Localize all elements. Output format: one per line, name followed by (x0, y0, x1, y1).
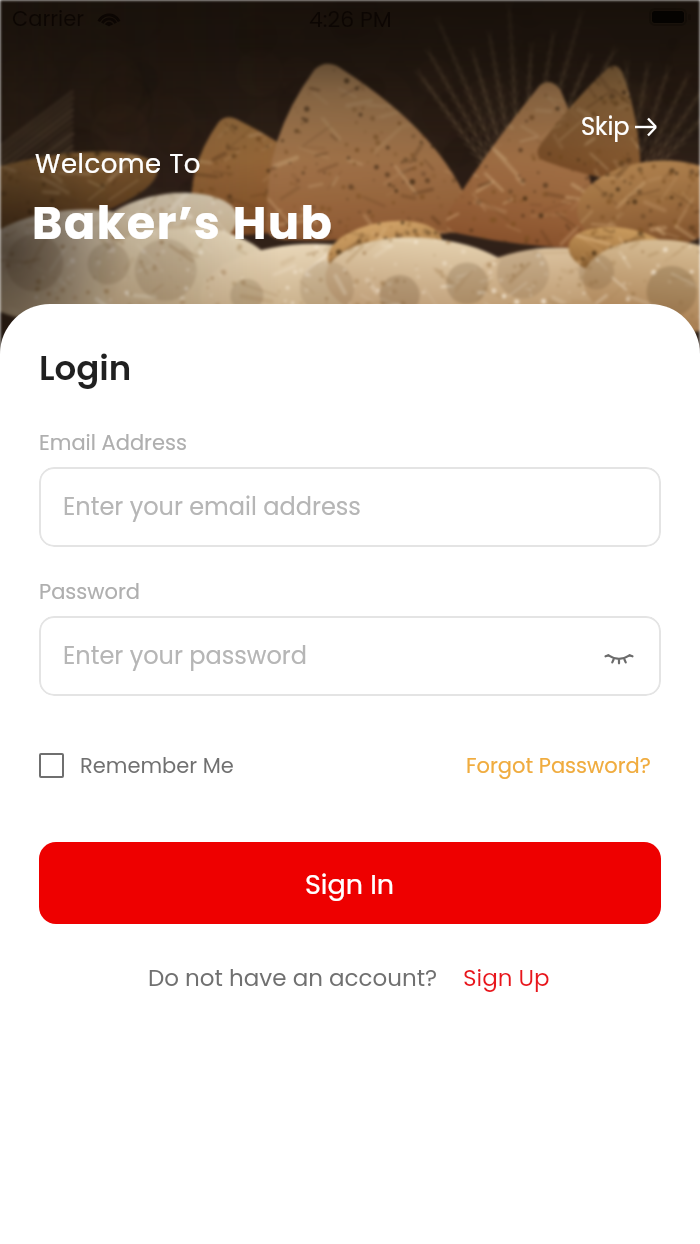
button[interactable]: Skip (578, 107, 660, 147)
other: Wi-Fi (95, 5, 123, 33)
other: Battery (648, 7, 692, 27)
other: Skip (635, 116, 657, 138)
button[interactable]: Show password (601, 638, 637, 674)
staticText: Do not have an account? (148, 962, 438, 994)
button[interactable]: Enter your email address (39, 467, 661, 547)
staticText: Welcome To (35, 146, 201, 182)
staticText: Carrier (12, 4, 85, 33)
button[interactable]: Sign Up (463, 962, 550, 994)
staticText: 4:26 PM (309, 4, 392, 35)
staticText: Password (39, 577, 140, 606)
staticText: Sign In (305, 866, 395, 904)
button[interactable]: Remember Me (39, 751, 234, 780)
staticText: Remember Me (80, 751, 234, 780)
staticText: Email Address (39, 428, 187, 457)
staticText: Sign Up (463, 962, 550, 994)
staticText: Enter your password (63, 639, 307, 673)
staticText: Enter your email address (63, 490, 361, 524)
staticText: Skip (581, 110, 630, 144)
button[interactable]: Sign In (39, 842, 661, 924)
staticText: Forgot Password? (466, 751, 651, 780)
button[interactable]: Forgot Password? (466, 751, 651, 780)
button[interactable]: Enter your password (39, 616, 661, 696)
staticText: Login (39, 344, 132, 392)
staticText: Baker’s Hub (32, 191, 334, 255)
